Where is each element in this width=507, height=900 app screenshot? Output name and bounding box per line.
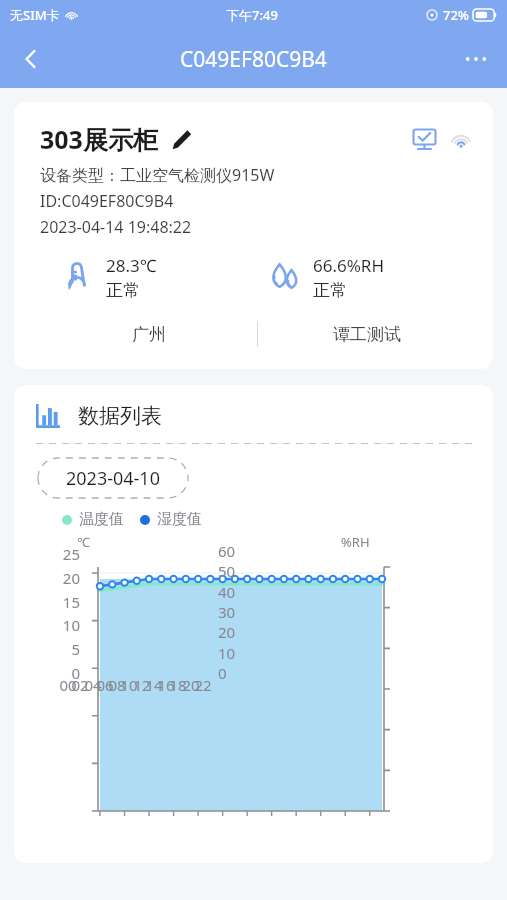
button[interactable]: 数据列表 xyxy=(36,403,162,429)
staticText: 下午7:49 xyxy=(226,6,278,24)
staticText: 2023-04-10 xyxy=(66,466,160,491)
staticText: 广州 xyxy=(132,324,166,345)
staticText: 02 xyxy=(69,675,91,695)
staticText: 22 xyxy=(192,675,214,695)
button[interactable]: 谭工测试 xyxy=(258,324,475,345)
staticText: 50 xyxy=(218,561,236,581)
staticText: 正常 xyxy=(313,280,347,301)
staticText: 10 xyxy=(118,675,140,695)
staticText: 28.3℃ xyxy=(106,254,157,277)
staticText: 15 xyxy=(44,592,80,612)
staticText: 2023-04-14 19:48:22 xyxy=(40,216,192,238)
button[interactable]: More options xyxy=(453,36,499,82)
staticText: 5 xyxy=(44,639,80,659)
staticText: 湿度值 xyxy=(157,510,202,529)
staticText: 温度值 xyxy=(79,510,124,529)
staticText: 10 xyxy=(44,615,80,635)
staticText: 20 xyxy=(44,568,80,588)
staticText: 72% xyxy=(443,6,469,24)
staticText: 12 xyxy=(131,675,153,695)
staticText: 18 xyxy=(167,675,189,695)
staticText: %RH xyxy=(341,533,370,551)
staticText: 60 xyxy=(218,541,236,561)
staticText: 正常 xyxy=(106,280,140,301)
button[interactable]: Signal strength xyxy=(447,125,475,153)
staticText: ID:C049EF80C9B4 xyxy=(40,190,174,212)
staticText: 06 xyxy=(94,675,116,695)
staticText: 无SIM卡 xyxy=(10,6,60,24)
staticText: 谭工测试 xyxy=(333,324,401,345)
staticText: 25 xyxy=(44,544,80,564)
staticText: 设备类型：工业空气检测仪915W xyxy=(40,164,275,186)
staticText: 20 xyxy=(180,675,202,695)
staticText: C049EF80C9B4 xyxy=(180,45,327,74)
staticText: 16 xyxy=(155,675,177,695)
staticText: 20 xyxy=(218,622,236,642)
button[interactable]: Device online xyxy=(409,124,439,154)
staticText: 0 xyxy=(44,663,80,683)
staticText: 0 xyxy=(218,663,227,683)
staticText: 04 xyxy=(82,675,104,695)
staticText: 数据列表 xyxy=(78,403,162,429)
staticText: 66.6%RH xyxy=(313,254,385,277)
staticText: 303展示柜 xyxy=(40,122,158,156)
staticText: 08 xyxy=(106,675,128,695)
staticText: 14 xyxy=(143,675,165,695)
staticText: 40 xyxy=(218,582,236,602)
staticText: ℃ xyxy=(77,533,90,551)
staticText: 30 xyxy=(218,602,236,622)
button[interactable]: 广州 xyxy=(40,324,257,345)
button[interactable]: Edit name xyxy=(168,126,194,152)
button[interactable]: Back xyxy=(8,36,54,82)
button[interactable]: 2023-04-10 xyxy=(36,456,190,500)
button[interactable]: 66.6%RH xyxy=(257,254,475,301)
staticText: 10 xyxy=(218,643,236,663)
button[interactable]: 28.3℃ xyxy=(40,254,257,301)
staticText: 00 xyxy=(57,675,79,695)
